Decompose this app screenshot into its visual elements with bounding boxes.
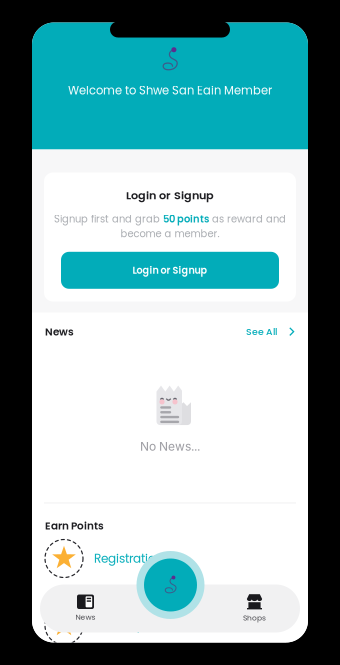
staticText: Welcome to Shwe San Eain Member xyxy=(68,82,272,99)
staticText: Registration xyxy=(94,550,164,567)
staticText: as reward and xyxy=(209,212,286,226)
staticText: Signup first and grab xyxy=(54,212,163,226)
staticText: Login or Signup xyxy=(132,264,207,277)
staticText: Earn Points xyxy=(45,518,104,533)
button[interactable]: Birthday Point xyxy=(45,606,321,644)
staticText: Birthday Point xyxy=(94,617,176,634)
staticText: No News... xyxy=(140,439,200,454)
staticText: See All xyxy=(246,325,277,338)
button[interactable]: Shops xyxy=(209,584,300,632)
button[interactable]: Registration xyxy=(45,539,321,577)
staticText: News xyxy=(45,324,74,339)
staticText: 50 points xyxy=(163,212,209,226)
staticText: become a member. xyxy=(120,227,219,241)
staticText: Shops xyxy=(243,613,266,623)
button[interactable]: See All xyxy=(246,325,295,338)
button[interactable]: News xyxy=(40,584,131,632)
staticText: Login or Signup xyxy=(126,187,214,203)
button[interactable]: Home xyxy=(136,551,204,619)
staticText: News xyxy=(75,612,95,622)
button[interactable]: Login or Signup xyxy=(61,252,279,289)
